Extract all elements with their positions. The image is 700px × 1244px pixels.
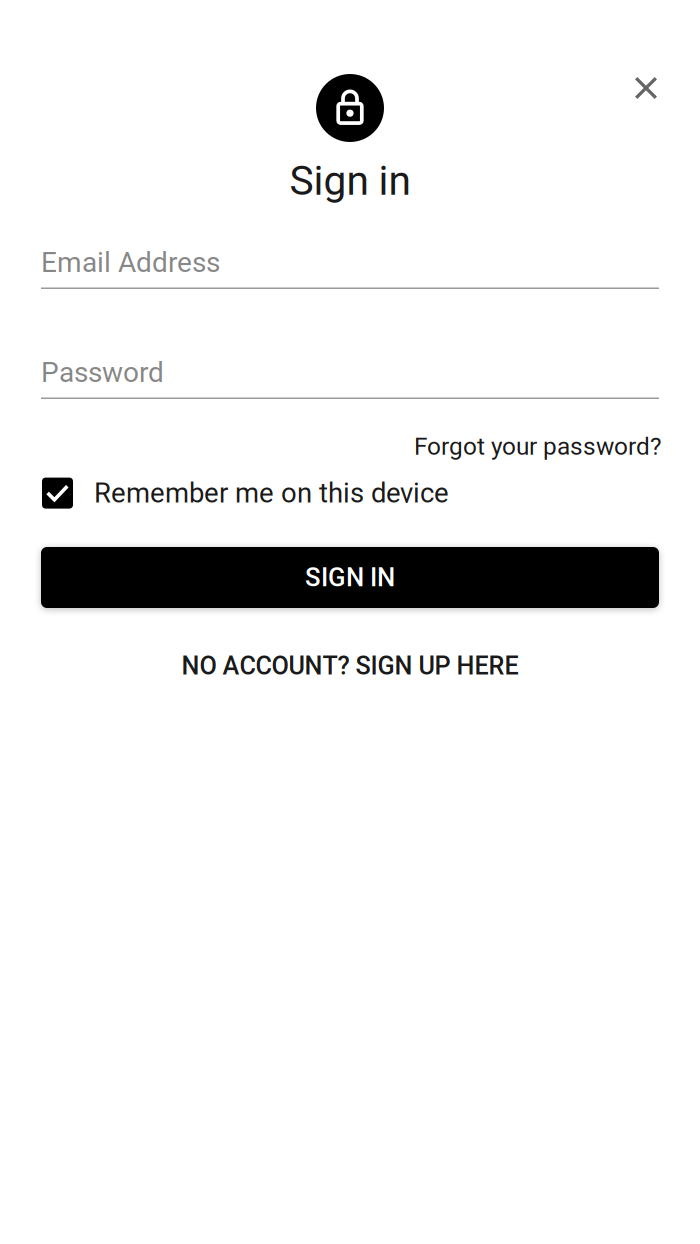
staticText: Email Address — [41, 246, 220, 279]
button[interactable]: Forgot your password? — [412, 428, 664, 465]
button[interactable]: Close — [624, 66, 668, 110]
button[interactable]: Email Address — [41, 246, 659, 289]
staticText: SIGN IN — [305, 562, 395, 593]
button[interactable]: Password — [41, 356, 659, 399]
button[interactable]: NO ACCOUNT? SIGN UP HERE — [177, 646, 522, 685]
button[interactable]: Remember me on this device — [41, 477, 659, 509]
staticText: Sign in — [289, 157, 410, 205]
staticText: Password — [41, 356, 164, 389]
button[interactable]: SIGN IN — [41, 547, 659, 608]
staticText: Remember me on this device — [94, 477, 449, 509]
staticText: Forgot your password? — [414, 432, 662, 461]
staticText: NO ACCOUNT? SIGN UP HERE — [181, 651, 518, 680]
